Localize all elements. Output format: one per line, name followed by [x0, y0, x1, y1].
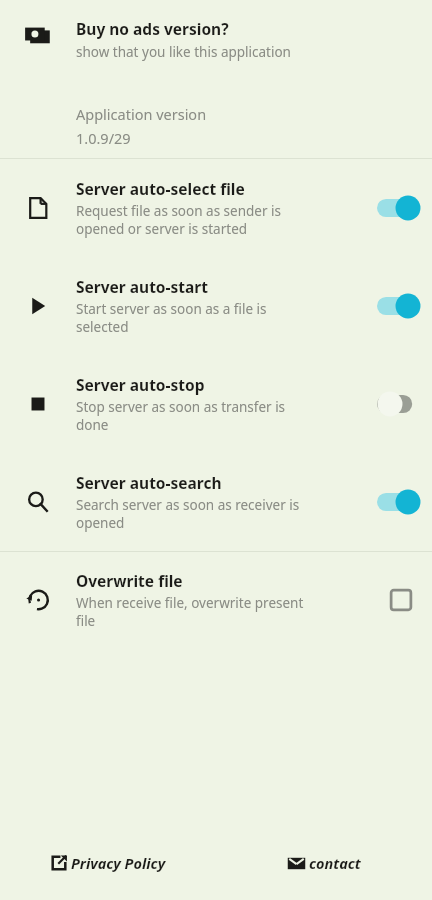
staticText: Application version: [76, 104, 207, 124]
staticText: Server auto-start: [76, 276, 208, 297]
button[interactable]: Application version: [0, 80, 432, 158]
button[interactable]: Toggle on: [377, 293, 421, 319]
button[interactable]: Server auto-start: [0, 257, 432, 355]
staticText: done: [76, 416, 109, 434]
staticText: selected: [76, 318, 129, 336]
staticText: Server auto-select file: [76, 178, 245, 199]
button[interactable]: Server auto-select file: [0, 159, 432, 257]
other: Open Privacy Policy: [50, 854, 68, 872]
staticText: Privacy Policy: [71, 853, 166, 873]
staticText: file: [76, 612, 96, 630]
staticText: Search server as soon as receiver is: [76, 496, 300, 514]
button[interactable]: Toggle on: [377, 195, 421, 221]
button[interactable]: Open Privacy Policy: [50, 853, 166, 873]
button[interactable]: Overwrite file checkbox: [388, 587, 414, 613]
button[interactable]: Toggle off: [377, 391, 421, 417]
button[interactable]: Toggle on: [377, 489, 421, 515]
staticText: opened: [76, 514, 125, 532]
button[interactable]: Buy no ads version?: [0, 0, 432, 80]
staticText: When receive file, overwrite present: [76, 594, 304, 612]
staticText: contact: [309, 853, 361, 873]
staticText: 1.0.9/29: [76, 128, 131, 148]
staticText: Buy no ads version?: [76, 18, 229, 39]
staticText: Start server as soon as a file is: [76, 300, 267, 318]
staticText: show that you like this application: [76, 43, 291, 61]
staticText: Overwrite file: [76, 570, 183, 591]
other: Contact by email: [287, 854, 306, 873]
staticText: Server auto-search: [76, 472, 222, 493]
button[interactable]: Server auto-search: [0, 453, 432, 551]
staticText: Server auto-stop: [76, 374, 205, 395]
button[interactable]: Overwrite file: [0, 552, 432, 648]
button[interactable]: Server auto-stop: [0, 355, 432, 453]
staticText: opened or server is started: [76, 220, 248, 238]
button[interactable]: Contact by email: [287, 853, 361, 873]
staticText: Request file as soon as sender is: [76, 202, 281, 220]
staticText: Stop server as soon as transfer is: [76, 398, 286, 416]
